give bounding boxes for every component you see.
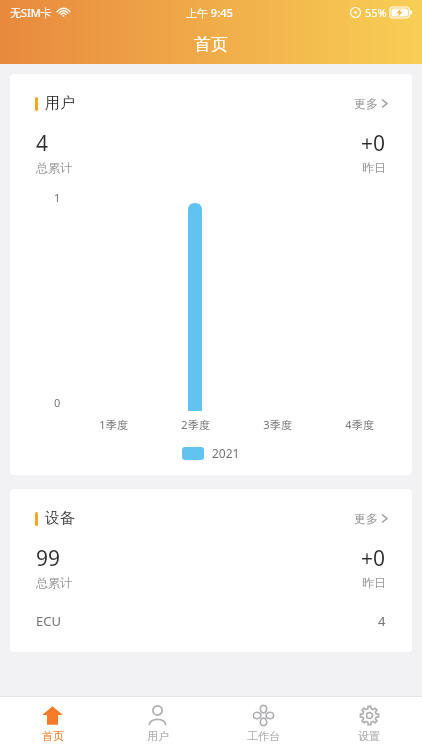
- staticText: 昨日: [362, 160, 386, 175]
- staticText: 上午 9:45: [186, 5, 233, 20]
- staticText: 更多: [354, 96, 378, 111]
- staticText: 用户: [45, 94, 75, 113]
- button[interactable]: Settings: [316, 697, 422, 750]
- staticText: 昨日: [362, 575, 386, 590]
- staticText: +0: [361, 544, 386, 573]
- staticText: 0: [54, 395, 61, 410]
- staticText: 设置: [358, 729, 380, 743]
- staticText: 99: [36, 544, 61, 573]
- staticText: +0: [361, 129, 386, 158]
- button[interactable]: 更多: [342, 91, 400, 116]
- staticText: 1季度: [99, 417, 128, 432]
- staticText: 4季度: [345, 417, 374, 432]
- button[interactable]: 更多: [342, 506, 400, 531]
- staticText: 工作台: [247, 729, 280, 743]
- staticText: 首页: [194, 34, 228, 55]
- button[interactable]: Users: [105, 697, 210, 750]
- staticText: ECU: [36, 612, 61, 630]
- staticText: 2季度: [181, 417, 210, 432]
- staticText: 总累计: [36, 160, 72, 175]
- staticText: 首页: [42, 729, 64, 743]
- button[interactable]: Home: [0, 697, 105, 750]
- button[interactable]: Workbench: [210, 697, 316, 750]
- staticText: 无SIM卡: [10, 5, 52, 20]
- staticText: 用户: [147, 729, 169, 743]
- staticText: 4: [36, 129, 49, 158]
- staticText: 2021: [212, 445, 240, 461]
- staticText: 3季度: [263, 417, 292, 432]
- staticText: 55%: [365, 5, 387, 20]
- staticText: 设备: [45, 509, 75, 528]
- staticText: 更多: [354, 511, 378, 526]
- staticText: 总累计: [36, 575, 72, 590]
- staticText: 1: [54, 190, 61, 205]
- button[interactable]: ECU: [10, 608, 412, 634]
- staticText: 4: [378, 612, 386, 630]
